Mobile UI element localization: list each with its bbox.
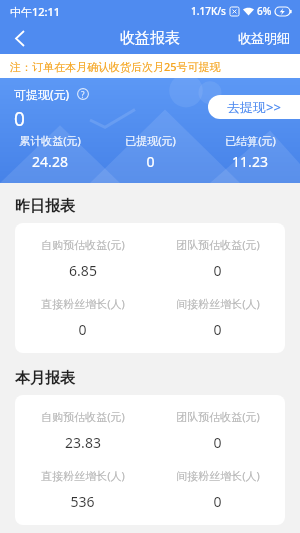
staticText: 0 [78,320,87,339]
staticText: 1.17K/s [191,4,226,18]
staticText: 间接粉丝增长(人) [176,468,260,483]
staticText: 0 [14,106,25,132]
staticText: 累计收益(元) [19,133,81,148]
staticText: 0 [213,492,222,511]
staticText: 6.85 [69,261,97,280]
staticText: 团队预估收益(元) [176,409,260,424]
button[interactable]: 帮助 [77,88,89,100]
staticText: 0 [213,261,222,280]
staticText: 自购预估收益(元) [41,409,125,424]
staticText: 0 [213,433,222,452]
staticText: 中午12:11 [10,4,61,19]
staticText: 收益报表 [120,29,180,48]
staticText: 已结算(元) [225,133,276,148]
staticText: 收益明细 [238,30,290,46]
staticText: 已提现(元) [125,133,176,148]
staticText: 去提现>> [227,98,281,116]
staticText: 0 [213,320,222,339]
staticText: 23.83 [65,433,101,452]
staticText: 0 [146,152,155,171]
button[interactable]: 去提现>> [208,95,300,119]
staticText: 6% [257,4,272,18]
staticText: 自购预估收益(元) [41,237,125,252]
staticText: 24.28 [32,152,68,171]
staticText: 直接粉丝增长(人) [41,468,125,483]
staticText: 可提现(元) [14,86,70,102]
staticText: 团队预估收益(元) [176,237,260,252]
button[interactable]: 自购预估收益(元) [15,395,285,525]
button[interactable]: 收益明细 [228,24,300,52]
staticText: 注：订单在本月确认收货后次月25号可提现 [10,59,221,74]
staticText: 间接粉丝增长(人) [176,296,260,311]
staticText: 昨日报表 [15,197,75,216]
staticText: 11.23 [232,152,268,171]
button[interactable]: 返回 [0,22,40,54]
staticText: 本月报表 [15,369,75,388]
staticText: ? [81,89,85,100]
button[interactable]: 自购预估收益(元) [15,223,285,353]
staticText: 536 [70,492,95,511]
staticText: 直接粉丝增长(人) [41,296,125,311]
